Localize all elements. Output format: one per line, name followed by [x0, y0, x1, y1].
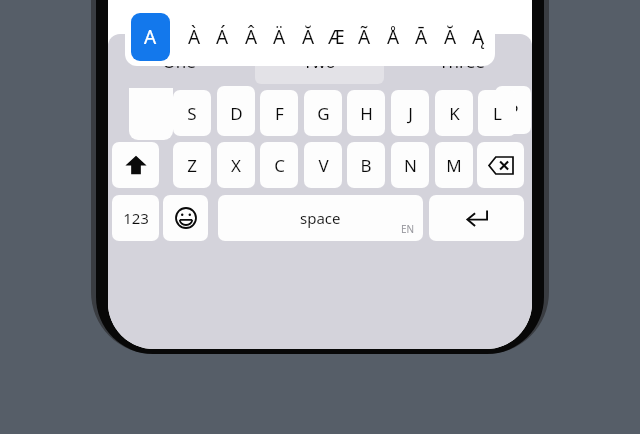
button[interactable]: Ā: [408, 16, 434, 58]
button[interactable]: “One”: [108, 34, 249, 89]
staticText: V: [318, 154, 329, 177]
staticText: Å: [387, 24, 400, 50]
staticText: H: [360, 102, 373, 125]
button[interactable]: Å: [380, 16, 406, 58]
button[interactable]: G: [304, 90, 342, 136]
button[interactable]: M: [435, 142, 473, 188]
button[interactable]: Â: [238, 16, 264, 58]
staticText: Æ: [328, 24, 345, 50]
button[interactable]: H: [347, 90, 385, 136]
button[interactable]: Two: [249, 34, 390, 89]
staticText: Á: [216, 24, 229, 50]
button[interactable]: G: [217, 86, 255, 134]
staticText: Ā: [415, 24, 428, 50]
staticText: EN: [401, 222, 415, 236]
button[interactable]: Z: [173, 142, 211, 188]
staticText: S: [187, 102, 197, 125]
button[interactable]: 123: [112, 195, 159, 241]
button[interactable]: Ă: [437, 16, 463, 58]
staticText: X: [231, 154, 241, 177]
staticText: F: [275, 102, 284, 125]
button[interactable]: Ă: [295, 16, 321, 58]
button[interactable]: B: [347, 142, 385, 188]
staticText: Ă: [444, 24, 457, 50]
staticText: Ă: [302, 24, 315, 50]
button[interactable]: P: [495, 86, 531, 134]
button[interactable]: Emoji: [163, 195, 208, 241]
button[interactable]: Three: [391, 34, 532, 89]
staticText: N: [404, 154, 417, 177]
staticText: L: [493, 102, 502, 125]
button[interactable]: S: [173, 90, 211, 136]
button[interactable]: Delete: [477, 142, 524, 188]
button[interactable]: F: [260, 90, 298, 136]
button[interactable]: Á: [209, 16, 235, 58]
button[interactable]: A: [131, 13, 170, 61]
staticText: D: [230, 102, 243, 125]
button[interactable]: À: [181, 16, 207, 58]
button[interactable]: space: [218, 195, 423, 241]
staticText: Â: [245, 24, 258, 50]
button[interactable]: K: [435, 90, 473, 136]
staticText: Ä: [273, 24, 286, 50]
button[interactable]: Shift: [112, 142, 159, 188]
button[interactable]: N: [391, 142, 429, 188]
staticText: space: [300, 208, 341, 228]
staticText: Z: [187, 154, 197, 177]
staticText: P: [508, 99, 519, 122]
staticText: Two: [303, 50, 336, 73]
staticText: G: [230, 99, 243, 122]
button[interactable]: D: [217, 90, 255, 136]
button[interactable]: Ã: [351, 16, 377, 58]
button[interactable]: X: [217, 142, 255, 188]
staticText: Ã: [358, 24, 371, 50]
staticText: Three: [439, 50, 485, 73]
staticText: B: [360, 154, 372, 177]
staticText: Ą: [472, 24, 485, 50]
staticText: 123: [123, 208, 149, 228]
staticText: M: [446, 154, 462, 177]
button[interactable]: Ą: [465, 16, 491, 58]
button[interactable]: C: [260, 142, 298, 188]
button[interactable]: J: [391, 90, 429, 136]
button[interactable]: Ä: [266, 16, 292, 58]
button[interactable]: Æ: [323, 16, 349, 58]
staticText: “One”: [156, 50, 202, 73]
staticText: C: [274, 154, 285, 177]
staticText: K: [449, 102, 460, 125]
staticText: À: [188, 24, 201, 50]
staticText: G: [317, 102, 330, 125]
staticText: J: [408, 102, 413, 125]
button[interactable]: Return: [429, 195, 524, 241]
staticText: A: [144, 24, 157, 50]
button[interactable]: L: [478, 90, 516, 136]
button[interactable]: V: [304, 142, 342, 188]
